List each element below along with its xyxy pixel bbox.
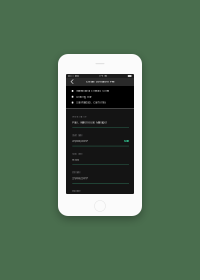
staticText: Start date — [72, 134, 82, 137]
button[interactable]: Start time — [72, 153, 129, 165]
staticText: Warehouse at Emerald Street — [76, 89, 109, 92]
staticText: Loading Bay — [76, 95, 91, 98]
staticText: End date — [72, 171, 80, 174]
button[interactable]: End date — [72, 171, 129, 183]
staticText: San Francisco, California — [76, 101, 105, 104]
staticText: 9:00 — [72, 158, 79, 161]
button[interactable]: Back — [70, 78, 75, 85]
staticText: iCloud — [75, 75, 79, 77]
staticText: Who is this for? — [72, 116, 87, 118]
button[interactable]: Warehouse at Emerald Street — [72, 88, 128, 94]
staticText: 9:41 AM — [99, 75, 107, 77]
button[interactable]: Start date — [72, 134, 129, 146]
staticText: 21/08/2017 — [72, 177, 88, 180]
staticText: End time — [72, 190, 80, 192]
staticText: Create donation PM — [86, 80, 114, 83]
button[interactable]: Who is this for? — [72, 115, 129, 128]
button[interactable]: Loading Bay — [72, 94, 128, 100]
staticText: Paul, Warehouse Manager — [72, 121, 107, 124]
staticText: Start time — [72, 153, 82, 155]
button[interactable]: San Francisco, California — [72, 100, 128, 105]
staticText: 21/08/2017 — [72, 139, 88, 143]
staticText: Now — [124, 140, 129, 142]
